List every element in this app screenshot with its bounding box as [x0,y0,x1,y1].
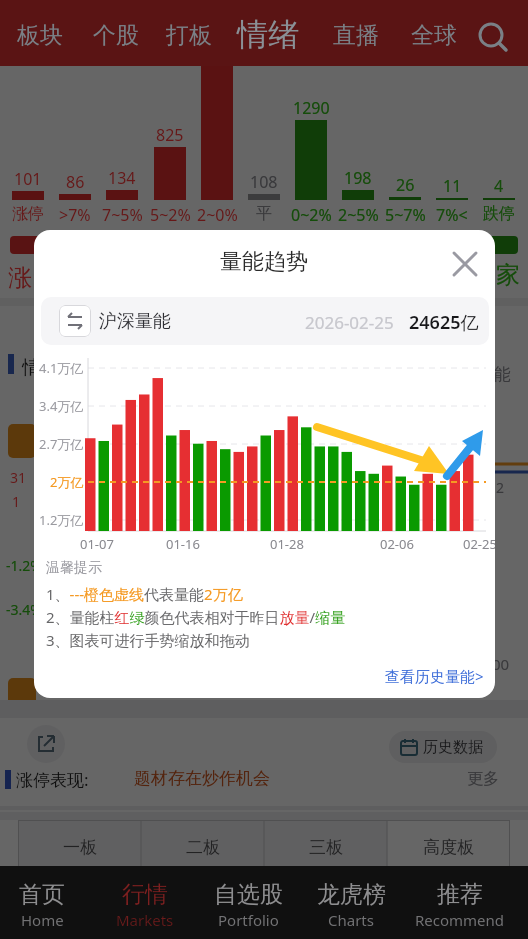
staticText: 情绪 [237,15,299,54]
staticText: 134 [108,167,136,189]
staticText: 量能趋势 [220,248,308,276]
staticText: 涨 2241 [8,260,94,293]
staticText: 直播 [333,21,379,50]
staticText: 86 [66,171,85,193]
staticText: 0~2% [291,204,332,226]
staticText: 7~5% [102,204,143,226]
staticText: 三板 [309,837,343,858]
staticText: -1.2% [6,556,42,575]
staticText: 情绪指标 可能 [22,354,141,380]
staticText: 2 [496,478,505,497]
staticText: 2026-02-25 [305,311,394,334]
button[interactable]: 个股 [86,14,146,56]
staticText: 打板 [166,21,212,50]
staticText: 1.2万亿 [39,511,84,529]
staticText: 历史数据 [423,738,483,757]
staticText: 查看历史量能> [385,666,484,686]
staticText: 板块 [17,21,63,50]
staticText: 198 [344,167,372,189]
staticText: 首页 [19,880,65,909]
button[interactable]: 行情 [105,866,205,939]
staticText: Recommend [415,910,505,930]
staticText: Markets [116,910,174,930]
staticText: 涨停表现: [16,768,89,791]
button[interactable] [451,250,479,278]
staticText: 26 [396,174,415,196]
staticText: 沪深量能 [99,310,171,333]
button[interactable]: 板块 [10,14,70,56]
staticText: 00 [492,654,510,674]
button[interactable]: 情绪 [230,8,306,60]
button[interactable]: 打板 [159,14,219,56]
staticText: 2.7万亿 [39,435,84,453]
staticText: 01-07 [80,535,114,553]
staticText: 涨停 [12,204,44,224]
staticText: 全球 [411,21,457,50]
staticText: 能 [494,364,511,385]
staticText: 5~2% [150,204,191,226]
button[interactable]: 首页 [2,866,102,939]
button[interactable] [27,725,65,763]
staticText: 01-16 [166,535,200,553]
button[interactable] [476,20,510,54]
staticText: 5~7% [385,204,426,226]
staticText: 行情 [122,880,168,909]
staticText: 跌停 [483,204,515,224]
staticText: >7% [59,204,91,226]
staticText: 01-28 [270,535,304,553]
button[interactable]: 沪深量能 [41,297,489,345]
staticText: 4.1万亿 [39,359,84,377]
button[interactable]: 龙虎榜 [311,866,411,939]
staticText: 温馨提示 [46,559,102,577]
button[interactable]: 历史数据 [389,731,497,763]
button[interactable]: 推荐 [420,866,520,939]
staticText: 2万亿 [50,473,84,491]
staticText: 推荐 [437,880,483,909]
staticText: 24625亿 [409,310,479,335]
staticText: 1 [12,492,21,511]
button[interactable]: 高度板 [387,820,510,874]
staticText: 1、---橙色虚线代表量能2万亿 [46,584,243,604]
staticText: 二板 [186,837,220,858]
staticText: 101 [14,168,42,190]
staticText: 2~0% [197,204,238,226]
staticText: 1290 [293,97,330,119]
button[interactable]: 自选股 [208,866,308,939]
staticText: 自选股 [214,880,283,909]
staticText: 02-06 [380,535,414,553]
staticText: Home [21,910,64,930]
staticText: 3.4万亿 [39,397,84,415]
staticText: 4 [494,175,504,197]
staticText: 2~5% [338,204,379,226]
button[interactable]: 全球 [404,14,464,56]
staticText: 02-25 [463,535,495,553]
staticText: 108 [250,171,278,193]
button[interactable]: 一板 [18,820,141,874]
button[interactable]: 二板 [141,820,264,874]
staticText: 825 [156,124,184,146]
staticText: 7%< [436,204,468,226]
staticText: 平 [256,204,272,224]
staticText: 11 [443,175,462,197]
staticText: 高度板 [423,837,474,858]
button[interactable]: 三板 [264,820,387,874]
staticText: 家 [496,260,520,290]
staticText: Charts [328,910,374,930]
staticText: 31 [10,468,27,487]
staticText: 3、图表可进行手势缩放和拖动 [46,630,250,650]
staticText: 2、量能柱红绿颜色代表相对于昨日放量/缩量 [46,607,346,627]
staticText: -3.4% [6,600,42,619]
staticText: 个股 [93,21,139,50]
staticText: 一板 [63,837,97,858]
staticText: 龙虎榜 [317,880,386,909]
button[interactable]: 查看历史量能> [344,666,484,686]
staticText: Portfolio [218,910,279,930]
button[interactable]: 直播 [326,14,386,56]
